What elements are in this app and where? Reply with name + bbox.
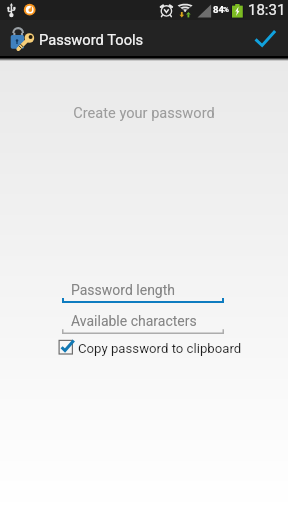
staticText: Password Tools (39, 31, 144, 48)
staticText: Password length (71, 282, 176, 298)
button[interactable]: Copy password to clipboard (58, 338, 242, 358)
staticText: Create your password (73, 104, 215, 121)
staticText: 18:31 (248, 1, 286, 19)
button[interactable]: Password length (62, 282, 224, 303)
button[interactable]: Available characters (62, 313, 224, 334)
staticText: 84 (213, 4, 224, 15)
staticText: Available characters (71, 313, 197, 329)
staticText: % (223, 5, 229, 14)
staticText: Copy password to clipboard (78, 341, 242, 356)
button[interactable]: Done (240, 20, 288, 56)
